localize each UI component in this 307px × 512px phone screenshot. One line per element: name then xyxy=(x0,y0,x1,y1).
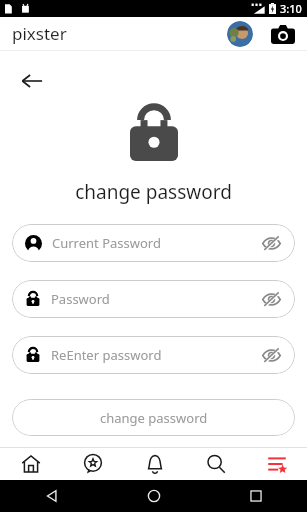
button[interactable]: Home xyxy=(0,448,62,480)
button[interactable]: Search xyxy=(185,448,246,480)
button[interactable]: Back xyxy=(0,480,103,512)
staticText: pixster xyxy=(12,22,67,45)
staticText: change password xyxy=(100,409,208,427)
button[interactable]: ReEnter password xyxy=(12,336,295,374)
staticText: ReEnter password xyxy=(51,346,260,364)
button[interactable]: Feed xyxy=(246,448,307,480)
button[interactable]: Back xyxy=(10,59,54,103)
button[interactable]: Toggle password visibility xyxy=(260,344,282,366)
button[interactable]: change password xyxy=(12,399,295,436)
staticText: change password xyxy=(0,179,307,205)
button[interactable]: Camera xyxy=(269,20,297,48)
button[interactable]: Profile xyxy=(227,21,253,47)
button[interactable]: Messages xyxy=(62,448,124,480)
button[interactable]: Toggle password visibility xyxy=(260,288,282,310)
button[interactable]: Current Password xyxy=(12,224,295,262)
staticText: Current Password xyxy=(52,234,260,252)
button[interactable]: Recent apps xyxy=(205,480,307,512)
button[interactable]: Home xyxy=(103,480,205,512)
button[interactable]: Password xyxy=(12,280,295,318)
button[interactable]: Toggle password visibility xyxy=(260,232,282,254)
button[interactable]: Notifications xyxy=(124,448,185,480)
staticText: Password xyxy=(51,290,260,308)
staticText: 3:10 xyxy=(280,1,302,16)
